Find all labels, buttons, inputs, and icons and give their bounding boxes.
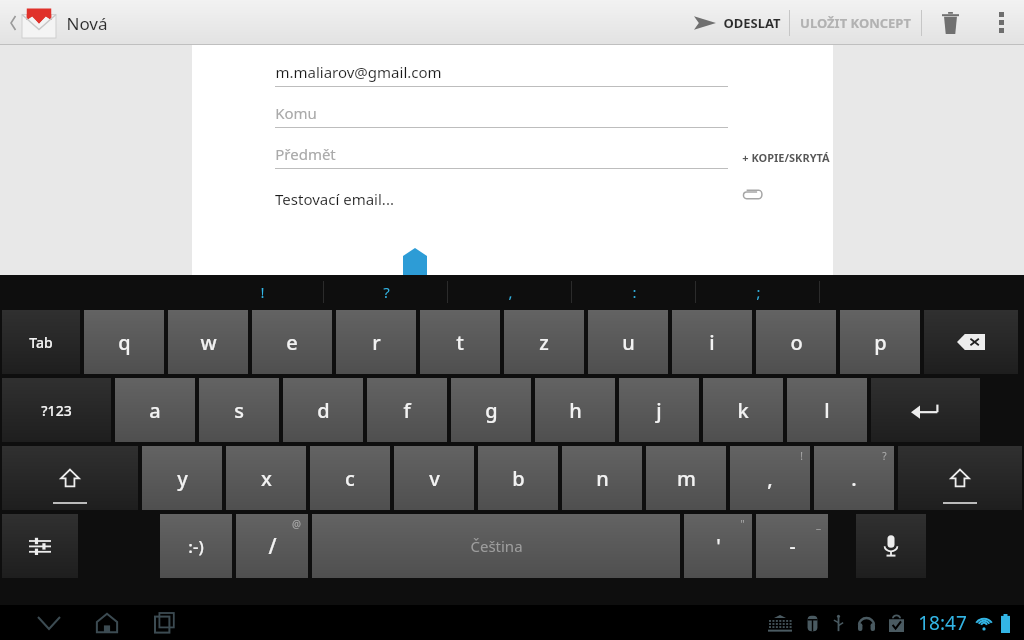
- staticText: Předmět: [275, 144, 336, 164]
- button[interactable]: settings: [2, 514, 78, 578]
- staticText: u: [622, 329, 635, 356]
- button[interactable]: shift: [898, 446, 1022, 510]
- button[interactable]: j: [619, 378, 699, 442]
- button[interactable]: Předmět: [275, 139, 728, 180]
- staticText: ODESLAT: [723, 14, 781, 32]
- button[interactable]: d: [283, 378, 363, 442]
- button[interactable]: w: [168, 310, 248, 374]
- button[interactable]: x: [226, 446, 306, 510]
- staticText: ;: [756, 282, 761, 302]
- button[interactable]: Delete: [922, 0, 978, 45]
- staticText: e: [286, 329, 298, 356]
- button[interactable]: :: [572, 275, 696, 308]
- button[interactable]: ': [684, 514, 752, 578]
- button[interactable]: p: [840, 310, 920, 374]
- button[interactable]: ,: [448, 275, 572, 308]
- button[interactable]: Home: [78, 605, 136, 640]
- staticText: l: [824, 397, 830, 424]
- staticText: m: [677, 465, 696, 492]
- staticText: d: [317, 397, 330, 424]
- button[interactable]: c: [310, 446, 390, 510]
- staticText: Tab: [29, 333, 53, 352]
- button[interactable]: a: [115, 378, 195, 442]
- button[interactable]: .: [814, 446, 894, 510]
- button[interactable]: Tab: [2, 310, 80, 374]
- button[interactable]: !: [200, 275, 324, 308]
- button[interactable]: Nová: [4, 8, 112, 38]
- button[interactable]: e: [252, 310, 332, 374]
- button[interactable]: i: [672, 310, 752, 374]
- button[interactable]: m: [646, 446, 726, 510]
- button[interactable]: Attach file: [742, 188, 763, 201]
- staticText: ULOŽIT KONCEPT: [800, 14, 911, 32]
- staticText: ,: [508, 282, 513, 302]
- button[interactable]: Komu: [275, 98, 728, 139]
- button[interactable]: Testovací email...: [275, 189, 394, 209]
- button[interactable]: ?123: [2, 378, 111, 442]
- button[interactable]: enter: [871, 378, 980, 442]
- button[interactable]: r: [336, 310, 416, 374]
- staticText: /: [268, 532, 277, 561]
- button[interactable]: z: [504, 310, 584, 374]
- button[interactable]: ULOŽIT KONCEPT: [790, 0, 921, 45]
- staticText: y: [177, 465, 188, 492]
- staticText: f: [403, 397, 411, 424]
- button[interactable]: Čeština: [312, 514, 680, 578]
- staticText: ': [716, 533, 721, 559]
- button[interactable]: ;: [696, 275, 820, 308]
- button[interactable]: t: [420, 310, 500, 374]
- staticText: .: [851, 465, 857, 492]
- button[interactable]: u: [588, 310, 668, 374]
- button[interactable]: ,: [730, 446, 810, 510]
- button[interactable]: shift: [2, 446, 138, 510]
- button[interactable]: -: [756, 514, 828, 578]
- staticText: t: [456, 329, 464, 356]
- staticText: !: [260, 282, 265, 302]
- button[interactable]: o: [756, 310, 836, 374]
- staticText: x: [261, 465, 272, 492]
- staticText: s: [234, 397, 244, 424]
- button[interactable]: mic: [856, 514, 926, 578]
- staticText: h: [569, 397, 582, 424]
- staticText: i: [709, 329, 715, 356]
- button[interactable]: q: [84, 310, 164, 374]
- staticText: r: [372, 329, 381, 356]
- button[interactable]: f: [367, 378, 447, 442]
- button[interactable]: k: [703, 378, 783, 442]
- staticText: !: [800, 449, 803, 463]
- staticText: ?123: [41, 401, 72, 420]
- button[interactable]: v: [394, 446, 474, 510]
- button[interactable]: m.maliarov@gmail.com: [275, 57, 728, 98]
- button[interactable]: b: [478, 446, 558, 510]
- staticText: b: [512, 465, 525, 492]
- button[interactable]: s: [199, 378, 279, 442]
- staticText: k: [737, 397, 749, 424]
- button[interactable]: h: [535, 378, 615, 442]
- staticText: _: [816, 517, 821, 531]
- button[interactable]: n: [562, 446, 642, 510]
- button[interactable]: y: [142, 446, 222, 510]
- button[interactable]: l: [787, 378, 867, 442]
- button[interactable]: :-): [160, 514, 232, 578]
- staticText: v: [429, 465, 440, 492]
- button[interactable]: + KOPIE/SKRYTÁ: [742, 150, 830, 165]
- staticText: Čeština: [470, 536, 523, 556]
- button[interactable]: Recent apps: [136, 605, 194, 640]
- button[interactable]: More options: [978, 0, 1024, 45]
- staticText: g: [485, 397, 498, 424]
- button[interactable]: backspace: [924, 310, 1018, 374]
- staticText: c: [345, 465, 355, 492]
- button[interactable]: ?: [324, 275, 448, 308]
- staticText: q: [118, 329, 131, 356]
- staticText: @: [292, 517, 301, 531]
- staticText: ?: [882, 449, 887, 463]
- staticText: o: [790, 329, 803, 356]
- button[interactable]: Back: [20, 605, 78, 640]
- staticText: ,: [767, 465, 773, 492]
- staticText: m.maliarov@gmail.com: [275, 62, 442, 82]
- staticText: + KOPIE/SKRYTÁ: [742, 150, 830, 165]
- button[interactable]: /: [236, 514, 308, 578]
- button[interactable]: ODESLAT: [686, 0, 789, 45]
- button[interactable]: g: [451, 378, 531, 442]
- staticText: -: [789, 533, 796, 559]
